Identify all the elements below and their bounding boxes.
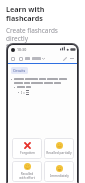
staticText: Circuits — [13, 68, 26, 73]
button[interactable]: Recalled partially — [44, 138, 74, 159]
staticText: Recalled partially — [46, 151, 72, 155]
staticText: I = — [21, 90, 25, 95]
staticText: 10:30 — [17, 47, 27, 52]
button[interactable]: Immediately — [44, 161, 74, 182]
staticText: Learn with flashcards — [6, 4, 81, 23]
button[interactable]: Recalled with effort — [12, 161, 42, 182]
button[interactable]: Circuits — [11, 67, 28, 74]
staticText: Recalled with effort — [19, 172, 35, 180]
staticText: Immediately — [50, 174, 69, 178]
staticText: Create flashcards directly from your not… — [6, 26, 81, 67]
staticText: Forgotten — [20, 151, 35, 155]
button[interactable]: Forgotten — [12, 138, 42, 159]
